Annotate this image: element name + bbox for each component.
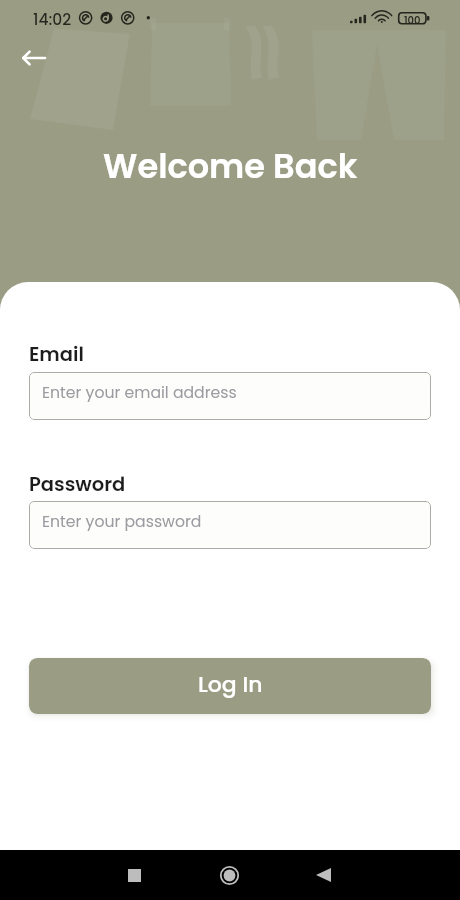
- button[interactable]: Log In: [29, 658, 431, 714]
- button[interactable]: Back: [14, 38, 54, 78]
- button[interactable]: Recents: [110, 850, 159, 900]
- staticText: 100: [404, 13, 421, 27]
- staticText: Enter your password: [42, 511, 202, 533]
- button[interactable]: Enter your password: [29, 501, 431, 549]
- staticText: Welcome Back: [103, 143, 358, 190]
- staticText: Log In: [198, 669, 263, 700]
- button[interactable]: Home: [205, 850, 254, 900]
- staticText: 14:02: [33, 9, 72, 31]
- button[interactable]: Enter your email address: [29, 372, 431, 420]
- staticText: Password: [29, 471, 126, 498]
- staticText: Enter your email address: [42, 382, 237, 404]
- button[interactable]: Back: [299, 850, 348, 900]
- staticText: Email: [29, 341, 84, 368]
